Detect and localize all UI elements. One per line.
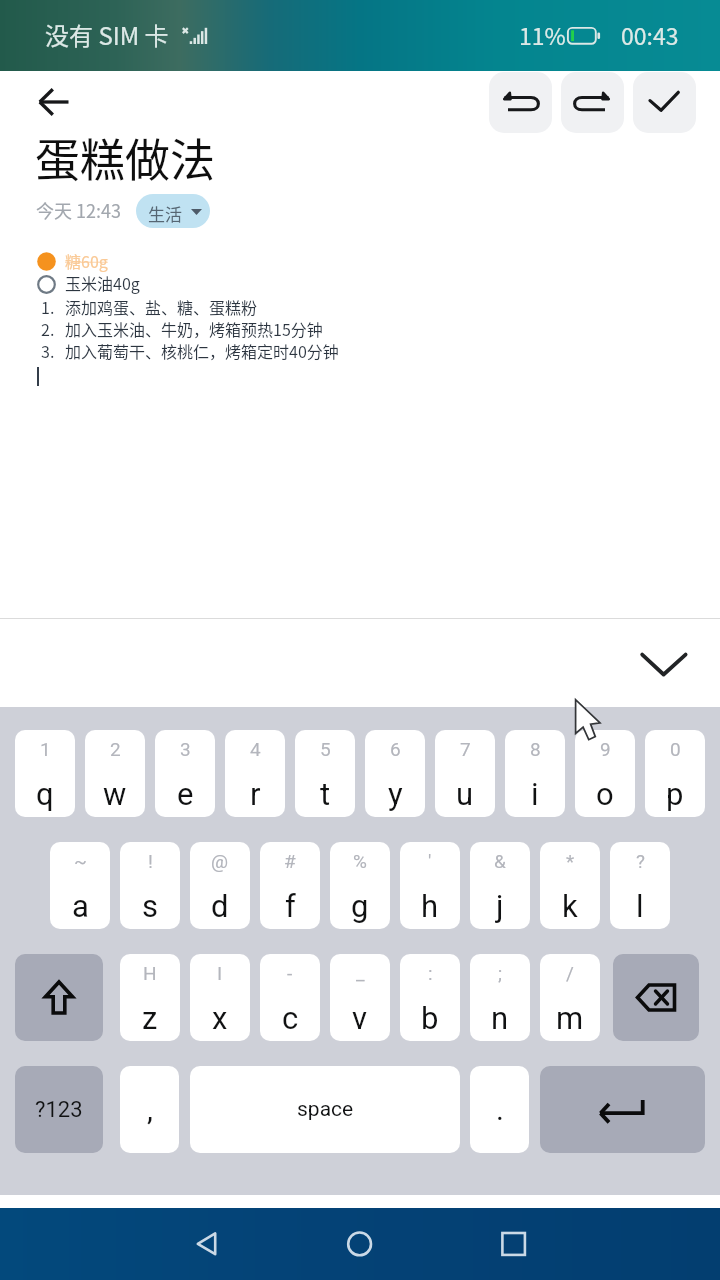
button[interactable]: Back xyxy=(176,1208,236,1280)
button[interactable]: Backspace xyxy=(613,954,699,1041)
staticText: 2. xyxy=(41,317,55,340)
button[interactable]: Undo xyxy=(489,72,552,133)
button[interactable]: 7 xyxy=(435,730,495,817)
staticText: m xyxy=(556,1000,584,1036)
staticText: 添加鸡蛋、盐、糖、蛋糕粉 xyxy=(65,295,258,318)
button[interactable]: . xyxy=(470,1066,529,1153)
button[interactable]: Redo xyxy=(561,72,624,133)
button[interactable]: * xyxy=(540,842,600,929)
staticText: c xyxy=(282,1000,299,1036)
staticText: u xyxy=(456,776,474,812)
staticText: * xyxy=(566,850,575,872)
staticText: 8 xyxy=(530,738,541,760)
button[interactable]: @ xyxy=(190,842,250,929)
button[interactable]: ' xyxy=(400,842,460,929)
staticText: I xyxy=(217,962,223,984)
button[interactable]: # xyxy=(260,842,320,929)
button[interactable]: ! xyxy=(120,842,180,929)
staticText: y xyxy=(388,776,403,812)
button[interactable]: 1 xyxy=(15,730,75,817)
staticText: d xyxy=(211,888,229,924)
staticText: / xyxy=(566,962,574,984)
button[interactable]: ? xyxy=(610,842,670,929)
button[interactable]: 0 xyxy=(645,730,705,817)
staticText: s xyxy=(142,888,158,924)
button[interactable]: % xyxy=(330,842,390,929)
staticText: , xyxy=(147,1092,153,1127)
staticText: ; xyxy=(498,962,503,984)
button[interactable]: 3 xyxy=(155,730,215,817)
staticText: 5 xyxy=(320,738,331,760)
button[interactable]: 生活 xyxy=(136,194,210,228)
staticText: 11% xyxy=(519,18,566,51)
button[interactable]: 5 xyxy=(295,730,355,817)
staticText: 没有 SIM 卡 xyxy=(45,17,169,52)
button[interactable]: Recent apps xyxy=(484,1208,544,1280)
staticText: h xyxy=(421,888,439,924)
staticText: % xyxy=(353,850,367,872)
button[interactable]: Enter xyxy=(540,1066,705,1153)
staticText: 蛋糕做法 xyxy=(35,125,216,190)
staticText: 1 xyxy=(40,738,51,760)
staticText: ? xyxy=(636,850,645,872)
button[interactable]: / xyxy=(540,954,600,1041)
button[interactable]: _ xyxy=(330,954,390,1041)
button[interactable]: - xyxy=(260,954,320,1041)
staticText: # xyxy=(284,850,296,872)
staticText: space xyxy=(297,1097,354,1122)
button[interactable]: Home xyxy=(330,1208,390,1280)
staticText: 00:43 xyxy=(621,18,679,51)
staticText: a xyxy=(72,888,89,924)
button[interactable]: 6 xyxy=(365,730,425,817)
button[interactable]: ~ xyxy=(50,842,110,929)
staticText: r xyxy=(250,776,261,812)
button[interactable]: 9 xyxy=(575,730,635,817)
staticText: ~ xyxy=(74,850,87,872)
staticText: n xyxy=(491,1000,509,1036)
staticText: b xyxy=(421,1000,439,1036)
staticText: : xyxy=(428,962,433,984)
button[interactable]: ; xyxy=(470,954,530,1041)
button[interactable]: , xyxy=(120,1066,179,1153)
button[interactable]: I xyxy=(190,954,250,1041)
staticText: v xyxy=(352,1000,368,1036)
staticText: . xyxy=(496,1092,504,1127)
staticText: x xyxy=(212,1000,228,1036)
staticText: 糖60g xyxy=(65,249,108,272)
button[interactable]: Back xyxy=(24,72,84,132)
staticText: i xyxy=(531,776,539,812)
staticText: 玉米油40g xyxy=(65,271,140,294)
staticText: ' xyxy=(428,850,432,872)
button[interactable]: 8 xyxy=(505,730,565,817)
staticText: o xyxy=(596,776,614,812)
staticText: t xyxy=(320,776,331,812)
staticText: 3. xyxy=(41,339,55,362)
staticText: l xyxy=(636,888,644,924)
staticText: e xyxy=(177,776,194,812)
staticText: 今天 12:43 xyxy=(36,197,121,223)
staticText: 2 xyxy=(110,738,121,760)
staticText: 9 xyxy=(600,738,611,760)
staticText: @ xyxy=(211,850,229,872)
button[interactable]: : xyxy=(400,954,460,1041)
staticText: k xyxy=(562,888,578,924)
staticText: 生活 xyxy=(148,201,182,226)
button[interactable]: Hide keyboard xyxy=(634,634,694,694)
button[interactable]: & xyxy=(470,842,530,929)
staticText: 1. xyxy=(41,295,55,318)
button[interactable]: Save xyxy=(633,72,696,133)
staticText: j xyxy=(496,888,504,924)
button[interactable]: space xyxy=(190,1066,460,1153)
button[interactable]: Shift xyxy=(15,954,103,1041)
button[interactable]: 2 xyxy=(85,730,145,817)
staticText: 7 xyxy=(460,738,471,760)
staticText: - xyxy=(287,962,293,984)
staticText: 6 xyxy=(390,738,401,760)
button[interactable]: 4 xyxy=(225,730,285,817)
button[interactable]: H xyxy=(120,954,180,1041)
staticText: 4 xyxy=(250,738,261,760)
staticText: H xyxy=(143,962,157,984)
staticText: z xyxy=(142,1000,158,1036)
staticText: _ xyxy=(356,962,365,984)
button[interactable]: ?123 xyxy=(15,1066,103,1153)
